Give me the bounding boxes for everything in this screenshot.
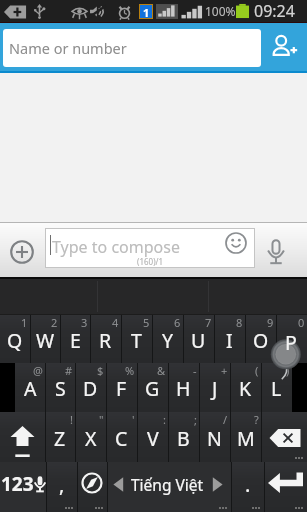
staticText: ): [286, 363, 290, 378]
staticText: 0: [298, 315, 305, 330]
staticText: N: [207, 425, 222, 452]
staticText: M: [237, 425, 255, 452]
staticText: %: [125, 363, 135, 378]
staticText: ": [99, 412, 104, 427]
staticText: A: [24, 375, 37, 402]
staticText: :: [163, 412, 166, 427]
staticText: #: [65, 363, 73, 378]
button[interactable]: ': [106, 412, 137, 462]
staticText: 2: [51, 315, 58, 330]
button[interactable]: 7: [183, 315, 214, 363]
button[interactable]: Name or number: [3, 29, 261, 67]
staticText: !: [70, 412, 73, 427]
staticText: 3: [81, 315, 88, 330]
staticText: T: [131, 327, 142, 354]
staticText: ,: [59, 471, 65, 498]
staticText: @: [33, 363, 43, 378]
staticText: 123: [1, 471, 34, 497]
staticText: V: [147, 425, 159, 452]
staticText: Type to compose: [52, 236, 180, 258]
button[interactable]: 6: [152, 315, 183, 363]
staticText: (: [255, 363, 259, 378]
staticText: F: [116, 375, 127, 402]
button[interactable]: Shift: [0, 412, 45, 462]
staticText: +: [221, 363, 228, 378]
staticText: 1: [21, 315, 28, 330]
button[interactable]: -: [168, 363, 199, 412]
button[interactable]: Enter: [264, 462, 307, 512]
staticText: &: [157, 363, 166, 378]
button[interactable]: .: [231, 462, 264, 512]
button[interactable]: 4: [90, 315, 121, 363]
button[interactable]: ;: [168, 412, 199, 462]
staticText: R: [99, 327, 112, 354]
button[interactable]: @: [15, 363, 45, 412]
button[interactable]: 9: [245, 315, 276, 363]
button[interactable]: ,: [46, 462, 77, 512]
staticText: -: [193, 363, 197, 378]
button[interactable]: ": [75, 412, 106, 462]
button[interactable]: ): [261, 363, 292, 412]
button[interactable]: Tiếng Việt: [107, 462, 231, 512]
button[interactable]: ?: [230, 412, 261, 462]
staticText: /: [223, 412, 228, 427]
staticText: $: [97, 363, 104, 378]
button[interactable]: %: [106, 363, 137, 412]
button[interactable]: 8: [214, 315, 245, 363]
staticText: 1: [143, 5, 150, 18]
staticText: U: [191, 327, 206, 354]
staticText: ;: [194, 412, 197, 427]
staticText: 5: [143, 315, 150, 330]
button[interactable]: $: [75, 363, 106, 412]
staticText: D: [83, 375, 98, 402]
button[interactable]: (: [230, 363, 261, 412]
staticText: B: [177, 425, 190, 452]
button[interactable]: Type to compose: [45, 228, 255, 268]
button[interactable]: 0: [276, 315, 307, 363]
button[interactable]: !: [45, 412, 75, 462]
staticText: K: [239, 375, 252, 402]
staticText: 7: [205, 315, 212, 330]
staticText: (160)/1: [137, 256, 164, 267]
staticText: Q: [7, 327, 23, 354]
staticText: S: [55, 375, 66, 402]
staticText: Name or number: [9, 38, 127, 58]
staticText: 6: [174, 315, 181, 330]
button[interactable]: [98, 277, 208, 315]
button[interactable]: &: [137, 363, 168, 412]
button[interactable]: [0, 277, 97, 315]
button[interactable]: 2: [30, 315, 60, 363]
button[interactable]: Voice input: [258, 234, 294, 270]
staticText: 4: [112, 315, 119, 330]
staticText: E: [70, 327, 81, 354]
staticText: L: [271, 375, 282, 402]
button[interactable]: 5: [121, 315, 152, 363]
staticText: .: [245, 471, 251, 498]
staticText: I: [226, 327, 233, 354]
staticText: C: [115, 425, 128, 452]
staticText: 8: [236, 315, 243, 330]
button[interactable]: Settings: [77, 462, 107, 512]
button[interactable]: [209, 277, 307, 315]
staticText: P: [285, 329, 297, 356]
staticText: ?: [254, 412, 259, 427]
staticText: Y: [162, 327, 174, 354]
button[interactable]: Add attachment: [6, 236, 38, 268]
button[interactable]: Backspace: [261, 412, 307, 462]
button[interactable]: 3: [60, 315, 90, 363]
staticText: G: [145, 375, 160, 402]
staticText: Z: [54, 425, 66, 452]
button[interactable]: 123: [0, 462, 46, 512]
staticText: ': [132, 412, 135, 427]
button[interactable]: Add recipient: [261, 21, 307, 71]
staticText: W: [36, 327, 55, 354]
staticText: J: [212, 375, 218, 402]
button[interactable]: /: [199, 412, 230, 462]
staticText: 100%: [205, 3, 236, 19]
button[interactable]: 1: [0, 315, 30, 363]
button[interactable]: #: [45, 363, 75, 412]
button[interactable]: +: [199, 363, 230, 412]
button[interactable]: :: [137, 412, 168, 462]
staticText: H: [176, 375, 191, 402]
staticText: X: [85, 425, 97, 452]
